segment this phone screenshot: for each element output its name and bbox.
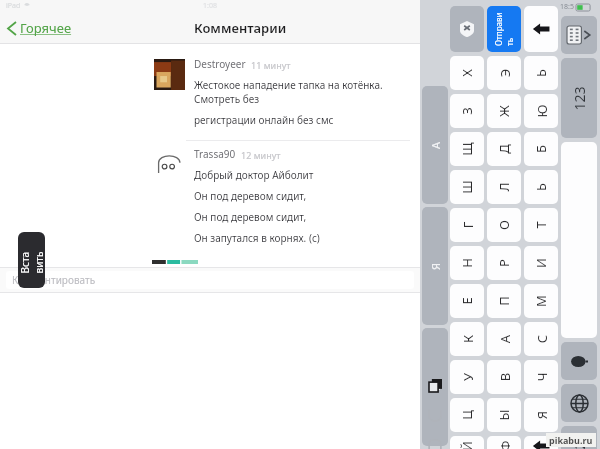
staticText: Ю [532,104,550,117]
staticText: Он запутался в корнях. (с) [194,231,320,245]
staticText: Горячее [20,19,72,37]
button[interactable]: И [524,246,558,280]
button[interactable]: Е [450,284,484,318]
button[interactable]: Redo [424,434,446,449]
staticText: 11 минут [251,59,291,71]
staticText: Я [427,262,442,270]
staticText: pikabu.ru [549,434,593,446]
button[interactable]: Горячее [4,15,76,41]
button[interactable]: Л [487,170,521,204]
staticText: 123 [570,86,589,111]
staticText: регистрации онлайн без смс [194,113,334,127]
staticText: Ж [495,105,513,117]
staticText: И [532,258,550,268]
button[interactable]: Backspace [524,6,558,52]
button[interactable]: Ы [487,398,521,432]
staticText: Он под деревом сидит, [194,210,307,224]
staticText: Э [495,68,513,77]
staticText: Комментарии [194,19,287,37]
button[interactable]: Ь [524,56,558,90]
staticText: Trassa90 [194,147,236,161]
button[interactable]: А [487,322,521,356]
button[interactable]: С [524,322,558,356]
button[interactable]: Я [524,398,558,432]
button[interactable]: П [487,284,521,318]
staticText: Ц [458,410,476,420]
button[interactable]: 123 [561,426,597,449]
staticText: Л [495,182,513,192]
button[interactable]: Р [487,246,521,280]
button[interactable]: Shift [450,6,484,52]
button[interactable]: Ф [487,436,521,449]
staticText: Добрый доктор Айболит [194,168,314,182]
button[interactable]: Return [524,436,558,449]
staticText: 12 минут [241,149,281,161]
staticText: О [495,220,513,230]
button[interactable]: Dictate [561,342,597,380]
button[interactable]: Вставить [18,232,45,288]
staticText: Б [532,145,550,153]
button[interactable]: Trassa90 [0,141,420,258]
staticText: 1:08 [203,1,217,11]
button[interactable]: Д [487,132,521,166]
button[interactable]: А [422,86,448,204]
staticText: В [495,372,513,381]
button[interactable]: Ж [487,94,521,128]
staticText: 123 [570,433,589,449]
button[interactable]: Ч [524,360,558,394]
button[interactable]: Change language [561,384,597,422]
button[interactable]: Hide keyboard [561,16,597,54]
button[interactable]: В [422,328,448,446]
button[interactable]: Й [450,436,484,449]
button[interactable]: Щ [450,132,484,166]
button[interactable]: Г [450,208,484,242]
button[interactable]: Н [450,246,484,280]
staticText: Е [458,297,476,305]
staticText: К [458,334,476,343]
staticText: С [532,334,550,343]
staticText: А [495,334,513,343]
staticText: Я [532,410,550,419]
button[interactable]: У [450,360,484,394]
staticText: Жестокое нападение тапка на котёнка. Смо… [194,78,412,106]
button[interactable]: Ц [450,398,484,432]
button[interactable]: М [524,284,558,318]
button[interactable]: Я [422,207,448,325]
staticText: Destroyeer [194,57,246,71]
staticText: Ь [532,183,550,191]
staticText: З [458,107,476,115]
button[interactable]: Ь [524,170,558,204]
button[interactable]: Отправить [487,6,521,52]
staticText: Х [458,69,476,77]
button[interactable]: 123 [561,58,597,138]
staticText: У [458,372,476,381]
button[interactable]: Э [487,56,521,90]
button[interactable]: Б [524,132,558,166]
button[interactable]: К [450,322,484,356]
staticText: Отправить [493,12,515,46]
staticText: Ы [495,409,513,421]
staticText: Д [495,144,513,154]
button[interactable]: В [487,360,521,394]
staticText: Ч [532,372,550,381]
staticText: Ш [458,180,476,194]
staticText: В [427,383,442,391]
staticText: Р [495,259,513,267]
staticText: 18:5 [560,2,574,12]
button[interactable]: Ю [524,94,558,128]
staticText: Он под деревом сидит, [194,189,307,203]
staticText: П [495,296,513,306]
button[interactable]: Ш [450,170,484,204]
staticText: Н [458,258,476,268]
button[interactable]: Т [524,208,558,242]
button[interactable]: Destroyeer [0,51,420,140]
button[interactable]: Х [450,56,484,90]
button[interactable]: З [450,94,484,128]
button[interactable]: О [487,208,521,242]
staticText: iPad [6,1,21,11]
button[interactable]: Комментировать [6,271,414,289]
staticText: Г [458,221,476,228]
button[interactable]: Layers [424,374,446,396]
